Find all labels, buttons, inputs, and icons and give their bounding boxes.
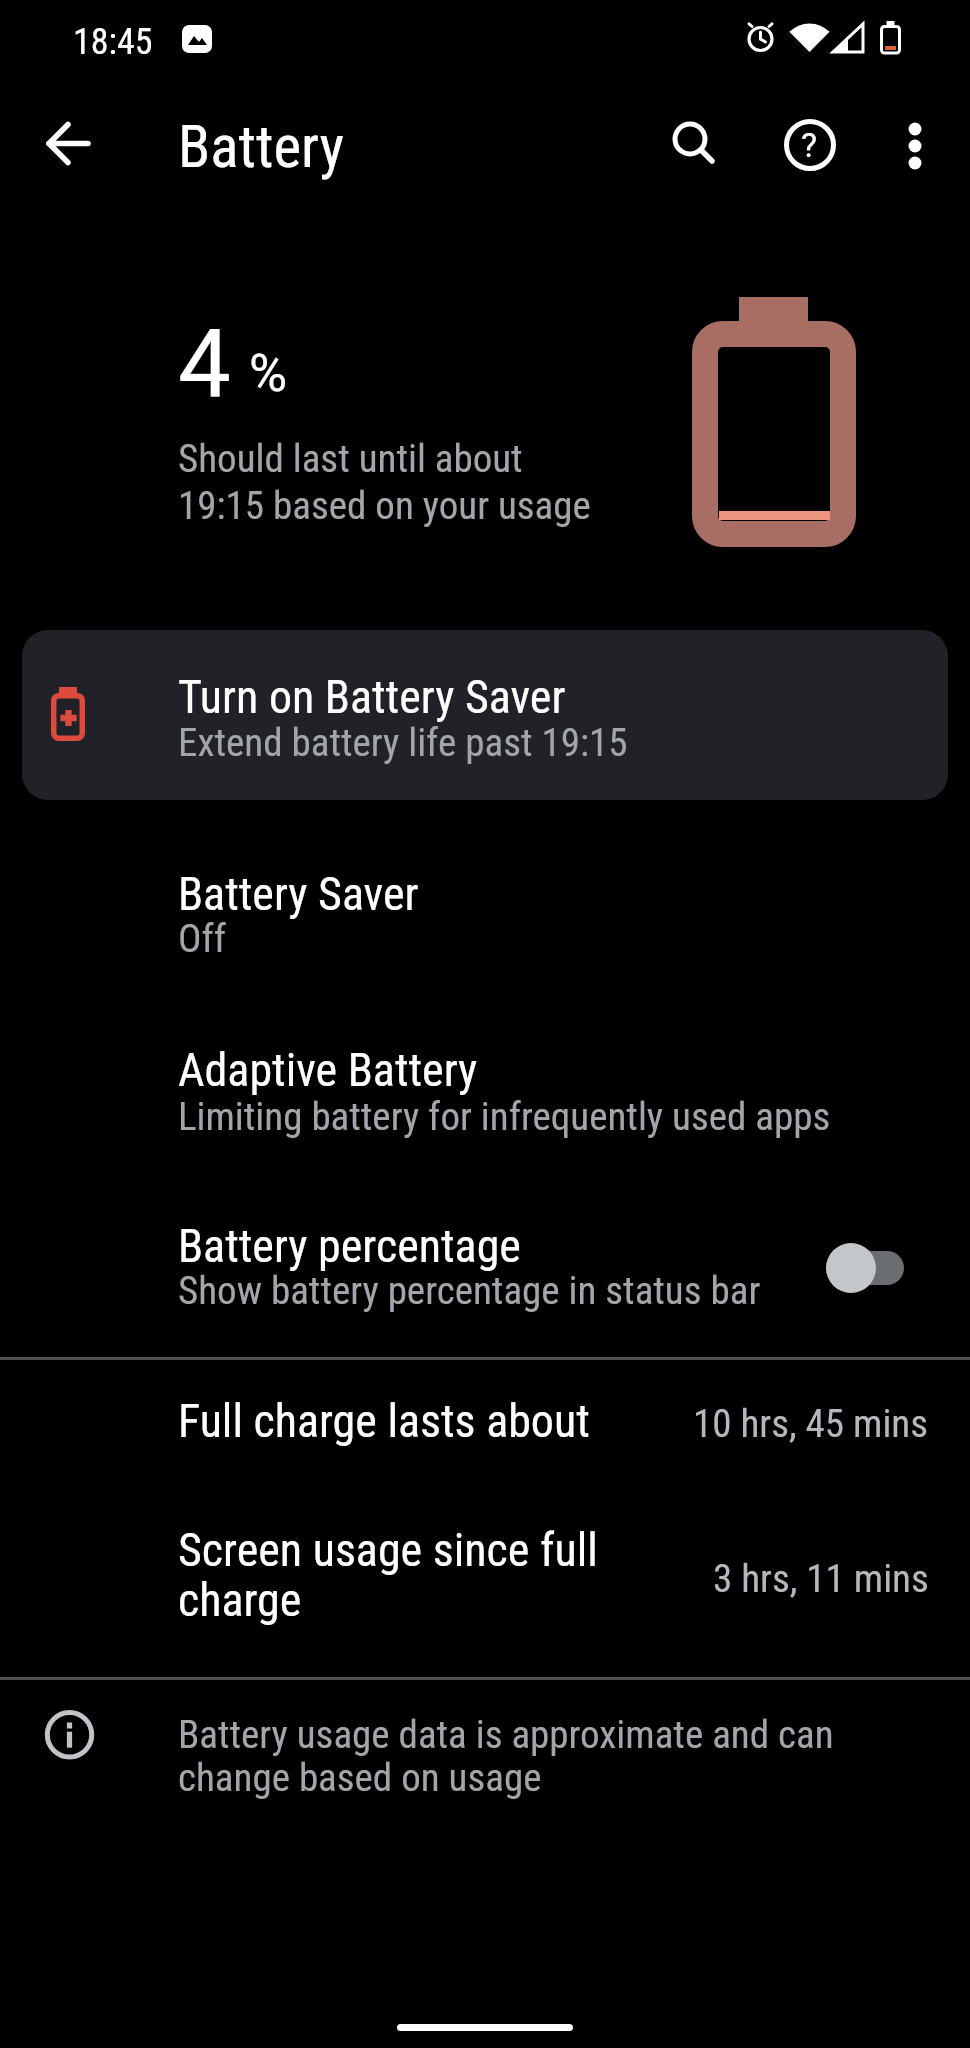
staticText: Turn on Battery Saver [178, 670, 566, 724]
staticText: ? [801, 125, 818, 165]
button[interactable] [0, 850, 970, 1006]
staticText: Screen usage since full charge [178, 1523, 598, 1627]
button[interactable] [0, 1026, 970, 1182]
button[interactable]: Screen usage since full charge [0, 1496, 970, 1646]
staticText: 3 hrs, 11 mins [713, 1556, 929, 1602]
button[interactable]: ? [778, 112, 842, 176]
button[interactable] [34, 110, 102, 178]
staticText: Battery usage data is approximate and ca… [178, 1712, 834, 1801]
staticText: 4 [178, 310, 231, 420]
staticText: Battery Saver [178, 867, 419, 921]
staticText: Battery [178, 112, 345, 181]
button[interactable]: Turn on Battery Saver [22, 630, 948, 800]
staticText: Off [178, 916, 227, 962]
staticText: 18:45 [73, 21, 153, 63]
staticText: Adaptive Battery [178, 1043, 478, 1097]
staticText: Full charge lasts about [178, 1394, 590, 1448]
button[interactable] [0, 1202, 970, 1358]
staticText: % [249, 343, 288, 404]
button[interactable] [893, 110, 941, 178]
staticText: Battery percentage [178, 1219, 521, 1273]
staticText: Extend battery life past 19:15 [178, 720, 628, 766]
button[interactable]: Full charge lasts about [0, 1376, 970, 1486]
staticText: 10 hrs, 45 mins [693, 1401, 929, 1447]
button[interactable] [660, 110, 728, 178]
staticText: Should last until about 19:15 based on y… [178, 436, 591, 529]
button[interactable] [806, 1228, 926, 1308]
staticText: Show battery percentage in status bar [178, 1268, 761, 1314]
staticText: Limiting battery for infrequently used a… [178, 1094, 831, 1140]
